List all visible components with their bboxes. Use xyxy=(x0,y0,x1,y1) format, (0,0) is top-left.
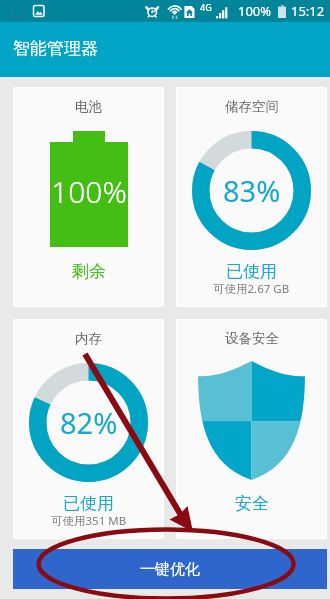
staticText: 100% xyxy=(51,171,127,212)
button[interactable]: 电池 xyxy=(13,87,164,307)
staticText: 安全 xyxy=(235,493,269,514)
staticText: 15:12 xyxy=(291,2,325,20)
staticText: 100% xyxy=(238,2,272,20)
button[interactable]: 内存 xyxy=(13,319,164,539)
staticText: 已使用 xyxy=(63,493,114,514)
staticText: 已使用 xyxy=(226,261,277,282)
staticText: 设备安全 xyxy=(225,330,279,347)
staticText: 可使用2.67 GB xyxy=(213,281,290,297)
button[interactable]: 设备安全 xyxy=(176,319,327,539)
button[interactable]: 储存空间 xyxy=(176,87,327,307)
staticText: 智能管理器 xyxy=(13,38,98,59)
staticText: 4G xyxy=(200,1,212,13)
staticText: 电池 xyxy=(75,98,102,115)
button[interactable]: 一键优化 xyxy=(13,549,327,589)
staticText: 83% xyxy=(223,171,281,210)
staticText: 一键优化 xyxy=(140,560,200,579)
staticText: 内存 xyxy=(75,330,102,347)
staticText: 可使用351 MB xyxy=(51,513,127,529)
staticText: 剩余 xyxy=(72,261,106,282)
staticText: 82% xyxy=(60,403,118,442)
staticText: 储存空间 xyxy=(225,98,279,115)
other: Device security xyxy=(198,361,305,480)
